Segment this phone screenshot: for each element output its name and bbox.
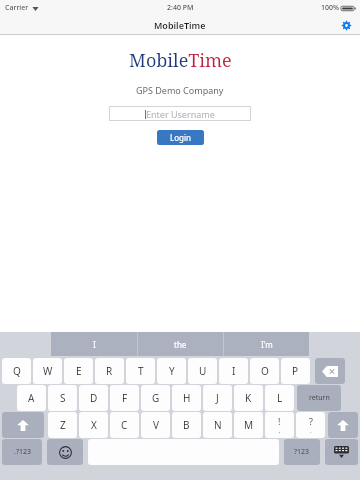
staticText: U [199, 364, 207, 378]
button[interactable]: Z [48, 412, 77, 438]
button[interactable]: G [141, 385, 170, 411]
staticText: L [277, 391, 283, 405]
staticText: return [309, 393, 330, 403]
button[interactable]: F [110, 385, 139, 411]
button[interactable]: Backspace [315, 358, 345, 384]
staticText: MobileTime [154, 19, 206, 31]
staticText: Login [170, 132, 191, 143]
staticText: O [261, 364, 269, 378]
button[interactable]: O [250, 358, 279, 384]
button[interactable]: V [141, 412, 170, 438]
button[interactable]: Login [157, 130, 204, 145]
button[interactable]: H [172, 385, 201, 411]
button[interactable]: A [17, 385, 46, 411]
staticText: 2:40 PM [167, 3, 194, 13]
button[interactable]: return [297, 385, 341, 411]
staticText: ? [309, 415, 313, 427]
staticText: GPS Demo Company [136, 84, 224, 96]
staticText: ?123 [294, 447, 310, 457]
staticText: G [152, 391, 160, 405]
button[interactable]: Shift [2, 412, 44, 438]
button[interactable]: K [234, 385, 263, 411]
staticText: S [60, 391, 66, 405]
button[interactable]: E [64, 358, 93, 384]
button[interactable]: R [95, 358, 124, 384]
staticText: K [245, 391, 252, 405]
button[interactable]: P [281, 358, 310, 384]
button[interactable]: W [33, 358, 62, 384]
button[interactable]: M [234, 412, 263, 438]
button[interactable]: N [203, 412, 232, 438]
button[interactable]: C [110, 412, 139, 438]
button[interactable]: ? [296, 412, 325, 438]
staticText: MobileTime [129, 48, 232, 73]
staticText: I [93, 339, 96, 350]
button[interactable]: L [265, 385, 294, 411]
staticText: V [153, 418, 159, 432]
staticText: Carrier [5, 3, 29, 13]
staticText: R [106, 364, 113, 378]
button[interactable]: Y [157, 358, 186, 384]
button[interactable]: Q [2, 358, 31, 384]
staticText: N [214, 418, 222, 432]
staticText: . [310, 427, 312, 435]
staticText: C [121, 418, 128, 432]
staticText: A [28, 391, 35, 405]
button[interactable]: J [203, 385, 232, 411]
staticText: X [91, 418, 97, 432]
staticText: the [174, 339, 187, 350]
button[interactable]: T [126, 358, 155, 384]
button[interactable]: I'm [224, 332, 309, 356]
button[interactable]: .?123 [2, 439, 42, 465]
staticText: , [279, 427, 281, 435]
staticText: I'm [261, 339, 273, 350]
staticText: F [122, 391, 128, 405]
button[interactable]: ?123 [284, 439, 320, 465]
button[interactable]: ! [265, 412, 294, 438]
button[interactable]: Hide keyboard [325, 439, 358, 465]
staticText: J [216, 391, 219, 405]
button[interactable]: Settings [338, 17, 354, 33]
staticText: M [244, 418, 254, 432]
button[interactable]: U [188, 358, 217, 384]
staticText: P [292, 364, 299, 378]
staticText: Enter Username [146, 108, 215, 120]
button[interactable]: B [172, 412, 201, 438]
button[interactable]: Emoji [47, 439, 83, 465]
staticText: Z [60, 418, 66, 432]
staticText: E [76, 364, 82, 378]
button[interactable]: Enter Username [109, 106, 251, 121]
button[interactable]: I [219, 358, 248, 384]
button[interactable]: Shift [328, 412, 358, 438]
staticText: ! [278, 415, 281, 427]
button[interactable]: I [51, 332, 137, 356]
staticText: .?123 [14, 447, 31, 457]
staticText: H [183, 391, 191, 405]
button[interactable]: S [48, 385, 77, 411]
staticText: B [183, 418, 190, 432]
staticText: Y [169, 364, 175, 378]
button[interactable]: the [138, 332, 223, 356]
staticText: W [43, 364, 53, 378]
staticText: D [90, 391, 98, 405]
staticText: I [232, 364, 236, 378]
staticText: Q [13, 364, 21, 378]
staticText: 100% [321, 3, 339, 13]
button[interactable]: X [79, 412, 108, 438]
button[interactable]: D [79, 385, 108, 411]
staticText: T [138, 364, 144, 378]
